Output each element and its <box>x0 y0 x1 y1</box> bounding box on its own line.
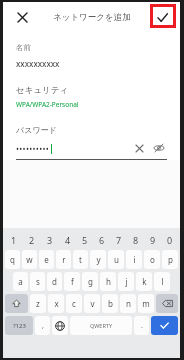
button[interactable]: v <box>84 294 100 313</box>
button[interactable]: l <box>154 272 170 291</box>
button[interactable]: u <box>108 250 124 269</box>
staticText: g <box>88 276 93 287</box>
button[interactable]: 1 <box>5 231 23 248</box>
button[interactable]: 削除 <box>156 294 178 313</box>
staticText: 0 <box>167 234 173 246</box>
button[interactable]: QWERTY <box>70 316 132 335</box>
button[interactable]: a <box>13 272 28 291</box>
button[interactable]: 5 <box>76 231 93 248</box>
button[interactable]: s <box>30 272 45 291</box>
staticText: f <box>71 276 74 287</box>
staticText: e <box>44 254 49 265</box>
staticText: 3 <box>47 234 53 246</box>
staticText: o <box>150 254 155 265</box>
button[interactable]: , <box>35 316 50 335</box>
staticText: 5 <box>82 234 88 246</box>
staticText: ネットワークを追加 <box>53 12 131 23</box>
button[interactable]: 保存 <box>151 6 173 28</box>
staticText: 8 <box>133 234 139 246</box>
staticText: 名前 <box>16 43 31 52</box>
staticText: m <box>142 298 150 309</box>
button[interactable]: 4 <box>59 231 76 248</box>
staticText: 2 <box>29 234 35 246</box>
staticText: i <box>133 254 136 265</box>
staticText: , <box>42 321 44 331</box>
button[interactable]: y <box>90 250 106 269</box>
staticText: v <box>90 298 95 309</box>
button[interactable]: 8 <box>127 231 144 248</box>
staticText: j <box>125 276 128 287</box>
staticText: 1 <box>11 234 17 246</box>
button[interactable]: n <box>120 294 136 313</box>
button[interactable]: b <box>102 294 118 313</box>
button[interactable]: 3 <box>41 231 59 248</box>
button[interactable]: o <box>144 250 160 269</box>
staticText: l <box>161 276 164 287</box>
button[interactable]: r <box>56 250 71 269</box>
button[interactable]: 閉じる <box>11 6 33 28</box>
button[interactable]: x <box>48 294 64 313</box>
button[interactable]: t <box>73 250 88 269</box>
button[interactable]: w <box>22 250 37 269</box>
button[interactable]: 0 <box>161 231 178 248</box>
staticText: •••••••••• <box>16 143 50 154</box>
button[interactable]: 9 <box>144 231 161 248</box>
staticText: s <box>36 276 40 287</box>
button[interactable]: シフト <box>5 294 28 313</box>
staticText: q <box>10 254 15 265</box>
button[interactable]: i <box>126 250 142 269</box>
button[interactable]: 2 <box>23 231 41 248</box>
staticText: x <box>54 298 59 309</box>
button[interactable]: ?123 <box>5 316 33 335</box>
staticText: QWERTY <box>90 322 113 329</box>
staticText: w <box>26 254 33 265</box>
staticText: セキュリティ <box>16 85 69 96</box>
staticText: y <box>96 254 101 265</box>
button[interactable]: 7 <box>110 231 127 248</box>
staticText: c <box>72 298 76 309</box>
staticText: u <box>114 254 119 265</box>
staticText: p <box>168 254 173 265</box>
button[interactable]: . <box>134 316 149 335</box>
button[interactable]: j <box>118 272 134 291</box>
staticText: 7 <box>116 234 122 246</box>
staticText: d <box>52 276 57 287</box>
staticText: k <box>142 276 147 287</box>
button[interactable]: d <box>47 272 62 291</box>
staticText: ?123 <box>13 322 26 330</box>
staticText: xxxxxxxxxx <box>16 58 60 69</box>
button[interactable]: m <box>138 294 154 313</box>
button[interactable]: パスワードを表示 <box>151 140 167 156</box>
button[interactable]: e <box>39 250 54 269</box>
staticText: z <box>36 298 40 309</box>
button[interactable]: p <box>162 250 178 269</box>
button[interactable]: 消去 <box>131 140 147 156</box>
staticText: パスワード <box>16 125 57 135</box>
staticText: 6 <box>99 234 105 246</box>
staticText: WPA/WPA2-Personal <box>16 100 79 109</box>
button[interactable]: c <box>66 294 82 313</box>
button[interactable]: 入力言語の切替 <box>52 316 68 335</box>
staticText: . <box>141 321 143 331</box>
staticText: b <box>108 298 113 309</box>
staticText: r <box>62 254 66 265</box>
staticText: 4 <box>65 234 71 246</box>
button[interactable]: q <box>5 250 20 269</box>
staticText: a <box>18 276 23 287</box>
button[interactable]: 完了 <box>151 316 178 335</box>
button[interactable]: z <box>30 294 46 313</box>
staticText: h <box>106 276 111 287</box>
button[interactable]: f <box>64 272 80 291</box>
button[interactable]: 6 <box>93 231 110 248</box>
staticText: 9 <box>150 234 156 246</box>
staticText: t <box>79 254 82 265</box>
button[interactable]: h <box>100 272 116 291</box>
staticText: n <box>126 298 131 309</box>
button[interactable]: k <box>136 272 152 291</box>
button[interactable]: g <box>82 272 98 291</box>
